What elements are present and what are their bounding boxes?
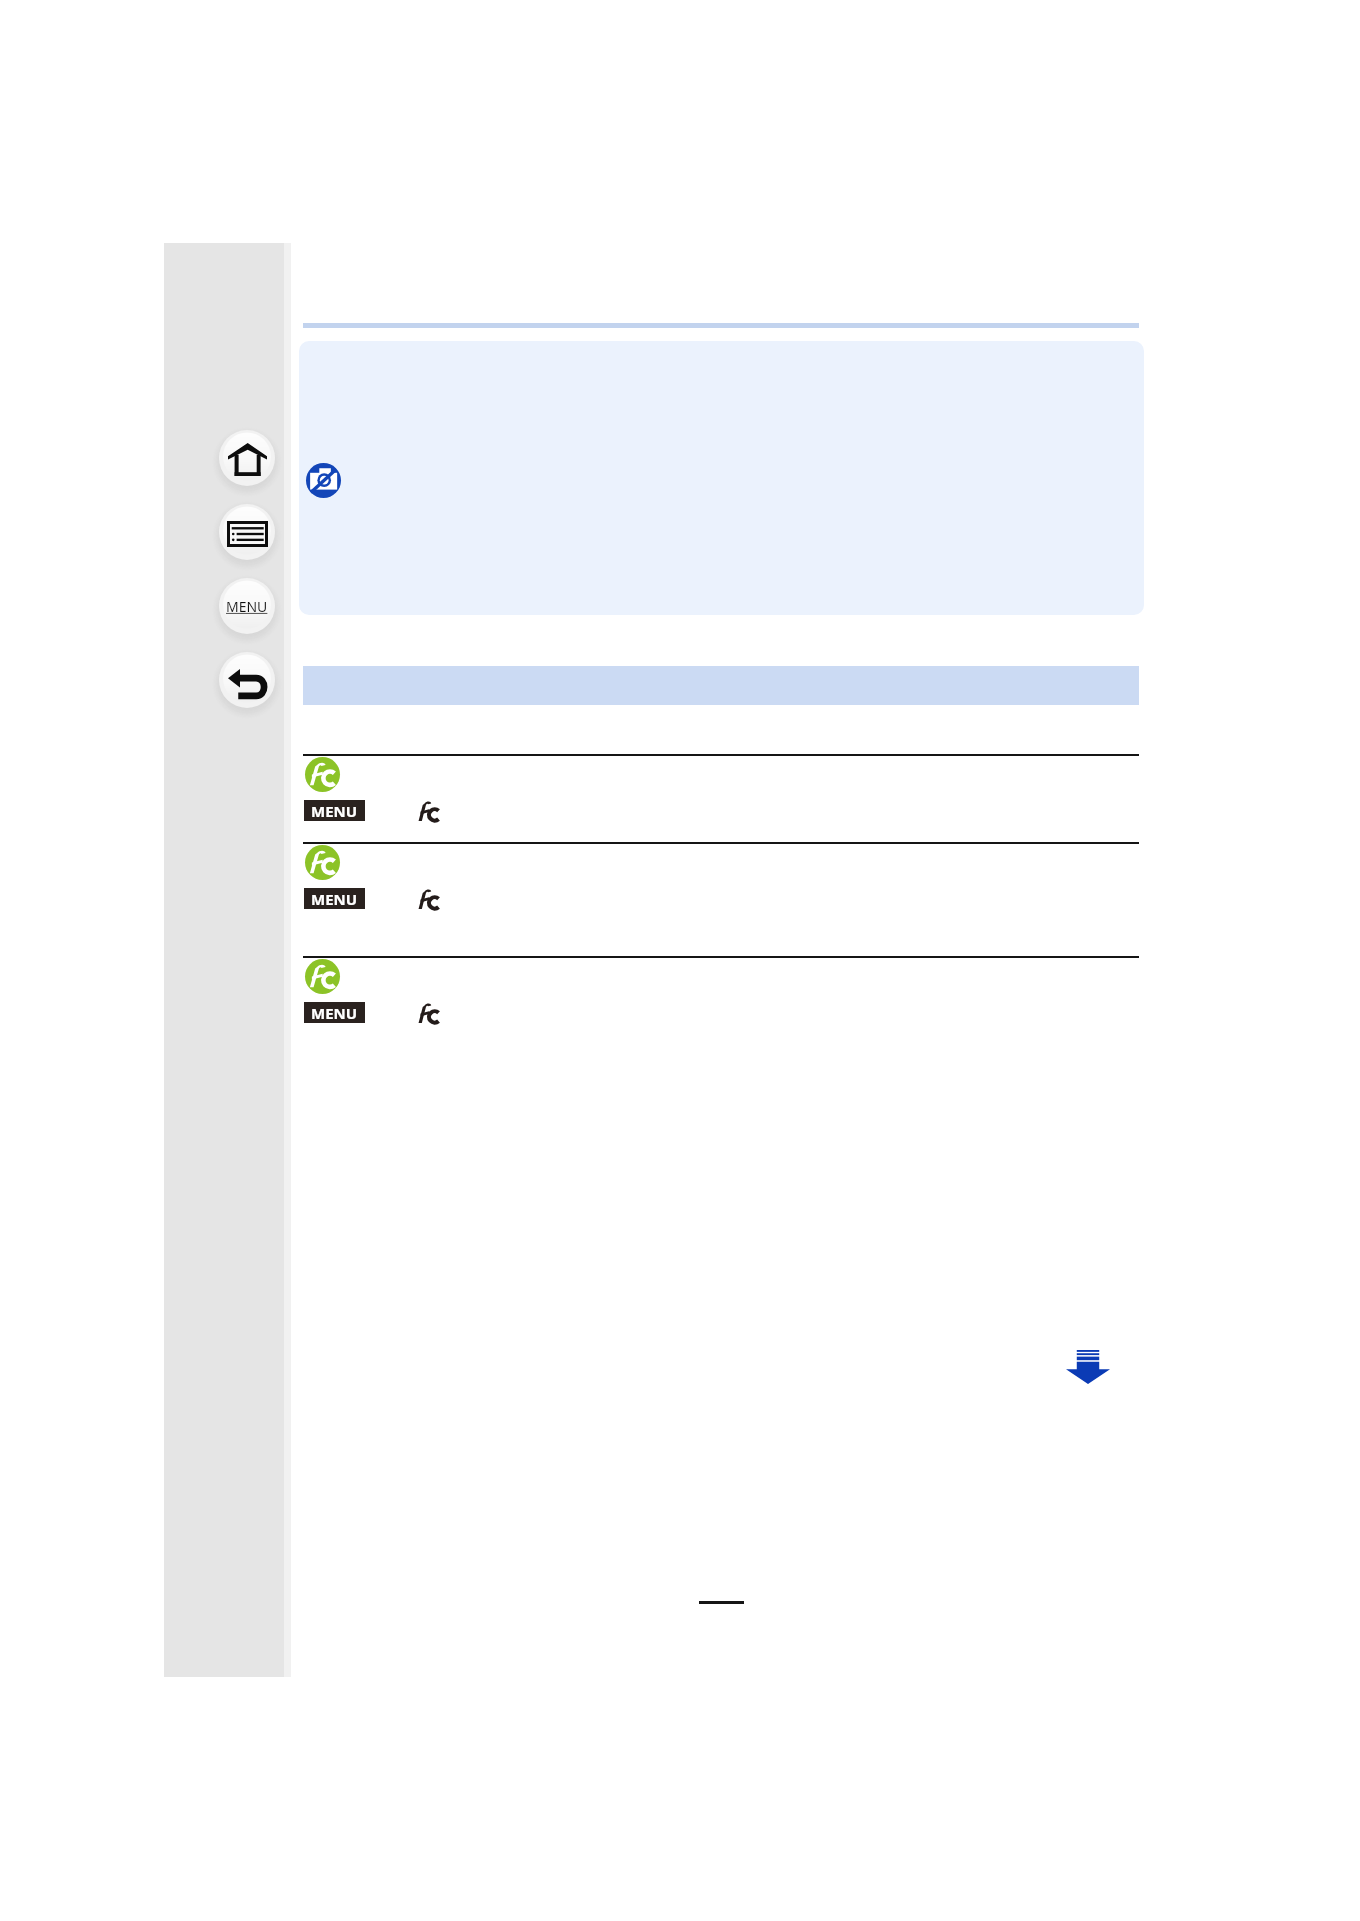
staticText: MENU [226,597,268,616]
button[interactable]: Back [219,652,275,708]
button[interactable]: Next page [1066,1350,1110,1384]
staticText: MENU [311,1003,358,1023]
button[interactable]: Menu [219,578,275,634]
button[interactable]: Contents [219,504,275,560]
staticText: MENU [311,889,358,909]
button[interactable]: Home [219,430,275,486]
staticText: MENU [311,801,358,821]
